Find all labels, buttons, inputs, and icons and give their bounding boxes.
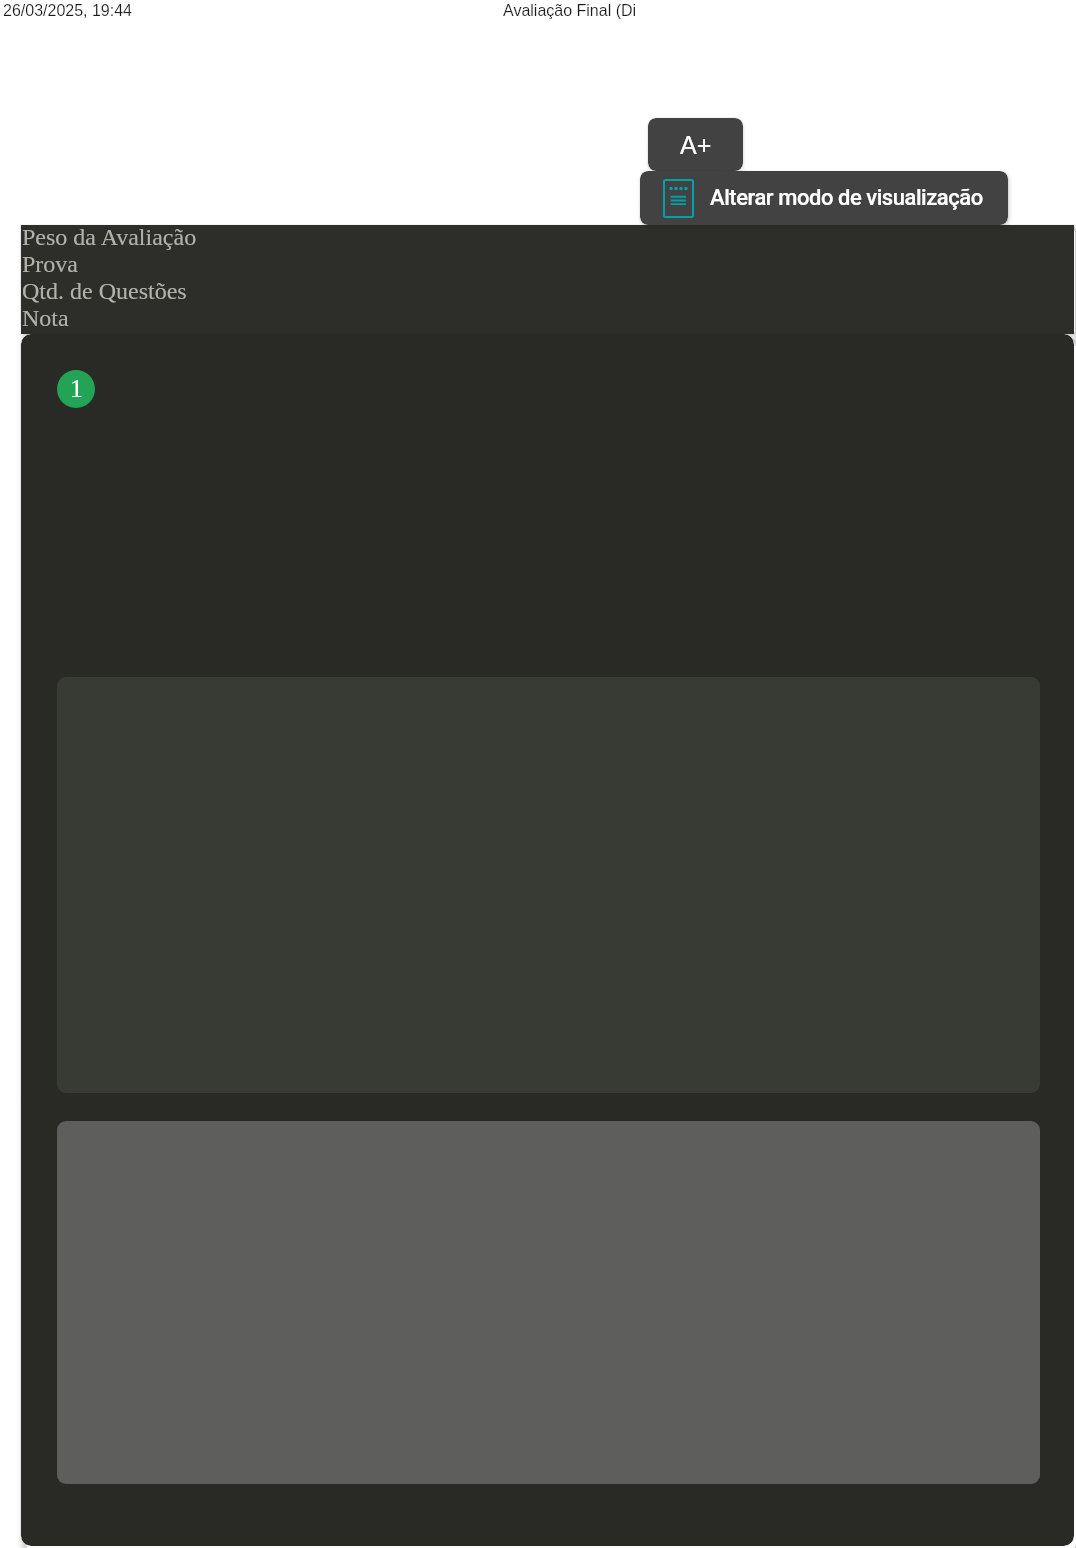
button[interactable]: Questão 1	[57, 370, 95, 408]
staticText: Nota	[22, 305, 69, 332]
staticText: A+	[680, 131, 712, 159]
staticText: Avaliação Final (Di	[503, 2, 637, 20]
staticText: Qtd. de Questões	[22, 278, 187, 305]
staticText: Alterar modo de visualização	[710, 185, 983, 211]
button[interactable]: Aumentar tamanho da fonte	[648, 118, 743, 171]
staticText: Prova	[22, 251, 78, 278]
other: Modo de visualização	[663, 179, 694, 218]
button[interactable]: Modo de visualização	[640, 171, 1008, 225]
staticText: Peso da Avaliação	[22, 225, 197, 251]
staticText: 26/03/2025, 19:44	[3, 2, 133, 20]
staticText: 1	[70, 374, 83, 403]
